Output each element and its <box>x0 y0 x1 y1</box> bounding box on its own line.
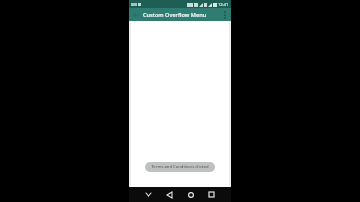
button[interactable]: More options <box>218 8 231 21</box>
button[interactable]: Back <box>164 189 175 200</box>
staticText: Custom Overflow Menu <box>143 11 207 19</box>
staticText: 12:41 <box>218 2 229 7</box>
button[interactable]: Home <box>185 189 196 200</box>
button[interactable]: Hide keyboard <box>143 189 154 200</box>
staticText: Terms and Conditions clicked <box>151 164 209 170</box>
button[interactable]: Terms and Conditions clicked <box>145 162 215 172</box>
button[interactable]: Recent apps <box>206 189 217 200</box>
